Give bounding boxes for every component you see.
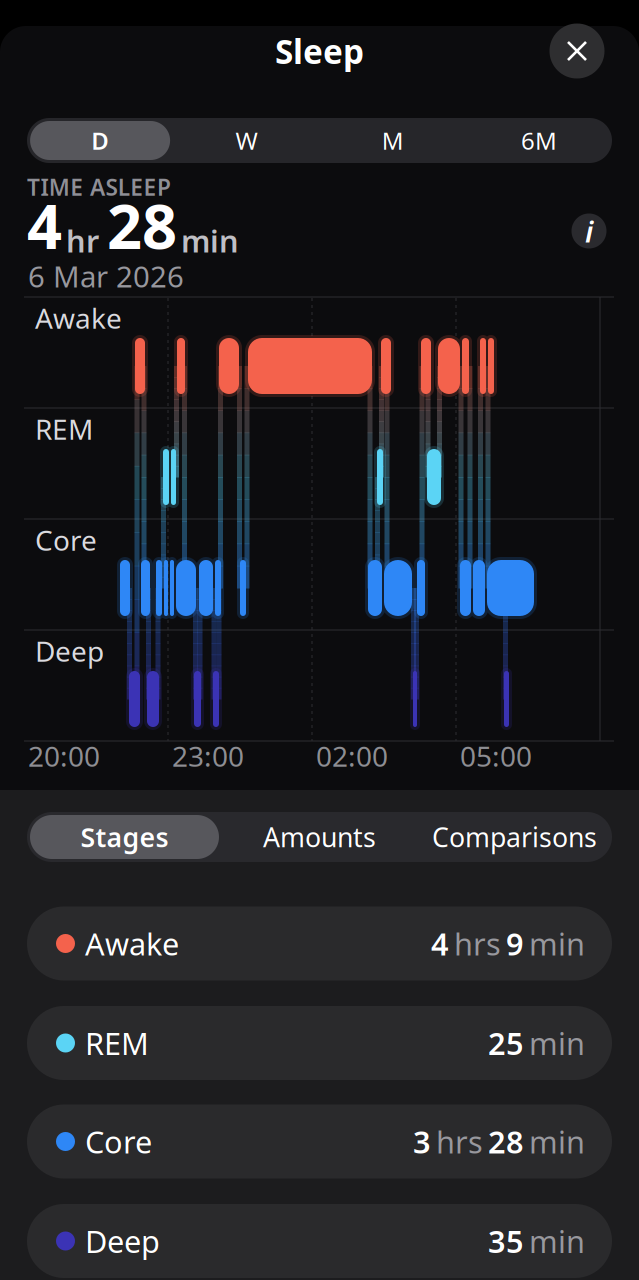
- staticText: Amounts: [263, 819, 376, 855]
- button[interactable]: [549, 23, 604, 78]
- button[interactable]: D: [27, 118, 173, 163]
- button[interactable]: Amounts: [222, 812, 417, 862]
- staticText: M: [382, 125, 404, 156]
- staticText: 9: [506, 923, 524, 964]
- staticText: min: [529, 1221, 585, 1261]
- staticText: Deep: [35, 632, 104, 670]
- staticText: hrs: [454, 923, 501, 964]
- staticText: min: [181, 220, 239, 261]
- staticText: 6M: [521, 125, 557, 156]
- staticText: 23:00: [172, 737, 244, 775]
- button[interactable]: 6M: [466, 118, 612, 163]
- staticText: 05:00: [460, 737, 532, 775]
- staticText: REM: [35, 410, 93, 448]
- button[interactable]: Stages: [27, 812, 222, 862]
- staticText: D: [91, 125, 109, 156]
- staticText: W: [235, 125, 257, 156]
- button[interactable]: M: [319, 118, 466, 163]
- button[interactable]: i: [571, 213, 606, 248]
- staticText: Deep: [85, 1221, 160, 1261]
- button[interactable]: Comparisons: [417, 812, 612, 862]
- staticText: Comparisons: [432, 819, 597, 855]
- staticText: 4: [431, 923, 449, 964]
- staticText: 02:00: [316, 737, 388, 775]
- staticText: Stages: [80, 819, 168, 855]
- staticText: Sleep: [275, 29, 364, 73]
- staticText: Core: [35, 521, 97, 559]
- staticText: 20:00: [28, 737, 100, 775]
- staticText: 25: [488, 1023, 524, 1063]
- staticText: 4: [27, 185, 62, 266]
- staticText: REM: [85, 1023, 149, 1063]
- staticText: i: [585, 211, 593, 250]
- button[interactable]: Core: [27, 1104, 612, 1178]
- staticText: min: [529, 1023, 585, 1063]
- button[interactable]: W: [173, 118, 319, 163]
- staticText: min: [529, 923, 585, 964]
- staticText: 28: [488, 1121, 524, 1162]
- staticText: hr: [66, 220, 99, 261]
- staticText: min: [529, 1121, 585, 1162]
- staticText: Awake: [85, 923, 179, 964]
- staticText: 35: [488, 1221, 524, 1261]
- staticText: 3: [413, 1121, 431, 1162]
- staticText: 6 Mar 2026: [28, 256, 184, 295]
- staticText: TIME ASLEEP: [27, 172, 171, 202]
- button[interactable]: REM: [27, 1006, 612, 1080]
- staticText: Awake: [35, 299, 122, 337]
- staticText: hrs: [436, 1121, 483, 1162]
- button[interactable]: Deep: [27, 1204, 612, 1278]
- staticText: 28: [107, 185, 177, 266]
- button[interactable]: Awake: [27, 906, 612, 980]
- staticText: Core: [85, 1121, 152, 1162]
